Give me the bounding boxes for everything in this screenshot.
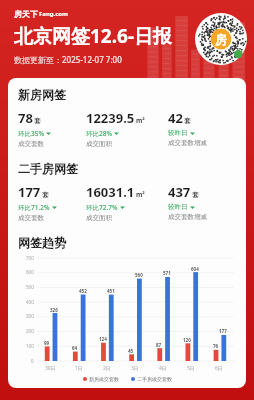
staticText: 成交面积 [86, 140, 112, 148]
staticText: 451 [107, 288, 115, 294]
staticText: 房天下 [14, 9, 38, 19]
staticText: 452 [79, 288, 87, 294]
staticText: 二手房成交套数 [137, 376, 172, 382]
staticText: 北京网签12.6-日报 [14, 23, 173, 49]
staticText: 4日 [159, 365, 167, 372]
staticText: 6日 [215, 365, 223, 372]
staticText: 400 [26, 299, 34, 305]
staticText: 1日 [75, 365, 83, 372]
staticText: 成交面积 [86, 214, 112, 222]
staticText: 177 [219, 328, 227, 334]
staticText: 120 [183, 337, 191, 343]
staticText: 300 [26, 313, 34, 319]
staticText: 326 [50, 307, 58, 313]
staticText: 3日 [131, 365, 139, 372]
staticText: 600 [26, 269, 34, 275]
staticText: 较昨日 [168, 203, 188, 211]
staticText: 成交套数增减 [168, 139, 207, 147]
staticText: 177 [18, 183, 41, 201]
staticText: 成交套数 [18, 214, 44, 222]
staticText: 16031.1 [86, 183, 135, 201]
staticText: 环比72.7% [86, 203, 118, 212]
staticText: 新房成交套数 [89, 376, 119, 382]
staticText: 99 [44, 340, 50, 346]
staticText: 成交套数增减 [168, 213, 207, 221]
staticText: 环比71.2% [18, 203, 50, 212]
button[interactable]: 177 [18, 183, 86, 222]
staticText: 124 [99, 336, 107, 342]
button[interactable]: 二手房成交套数 [131, 376, 172, 382]
staticText: 437 [168, 183, 191, 201]
button[interactable]: 42 [168, 109, 236, 147]
button[interactable]: 新房网签 [18, 87, 66, 102]
staticText: 200 [26, 328, 34, 334]
staticText: 较昨日 [168, 129, 188, 137]
button[interactable]: 二手房网签 [18, 161, 78, 176]
staticText: 45 [128, 348, 134, 354]
staticText: 700 [26, 255, 34, 261]
button[interactable]: 网签趋势 [18, 235, 66, 250]
staticText: 571 [163, 270, 171, 276]
staticText: 0 [31, 358, 34, 364]
staticText: 2日 [103, 365, 111, 372]
button[interactable]: 扫描二维码 [195, 13, 247, 65]
staticText: m² [136, 116, 145, 125]
staticText: 64 [72, 345, 78, 351]
staticText: 100 [26, 343, 34, 349]
staticText: 套 [42, 191, 49, 199]
staticText: 数据更新至：2025-12-07 7:00 [14, 54, 122, 65]
staticText: 套 [192, 191, 199, 199]
staticText: 12239.5 [86, 109, 135, 127]
staticText: m² [136, 190, 145, 199]
staticText: 5日 [187, 365, 195, 372]
staticText: 76 [213, 343, 219, 349]
staticText: 87 [156, 342, 162, 348]
button[interactable]: 新房成交套数 [83, 376, 119, 382]
staticText: 30日 [45, 365, 56, 372]
staticText: 500 [26, 284, 34, 290]
button[interactable]: 437 [168, 183, 236, 221]
staticText: Fang.com [39, 10, 68, 18]
button[interactable]: 12239.5 [86, 109, 168, 148]
button[interactable]: 78 [18, 109, 86, 148]
staticText: 成交套数 [18, 140, 44, 148]
staticText: 套 [184, 117, 191, 125]
staticText: 房 [215, 32, 227, 47]
staticText: 560 [135, 272, 143, 278]
button[interactable]: 0 [18, 253, 236, 376]
staticText: 604 [191, 266, 199, 272]
staticText: 环比35% [18, 129, 44, 138]
staticText: 环比28% [86, 129, 112, 138]
staticText: 套 [34, 117, 41, 125]
staticText: 78 [18, 109, 33, 127]
button[interactable]: 16031.1 [86, 183, 168, 222]
staticText: 42 [168, 109, 183, 127]
